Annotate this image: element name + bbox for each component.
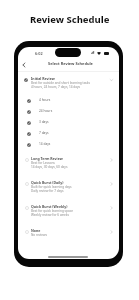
staticText: Best for outside and short learning task… — [31, 81, 90, 85]
staticText: 3 days — [39, 120, 49, 124]
staticText: Select Review Schedule — [48, 61, 93, 66]
staticText: Long Term Review — [31, 156, 63, 161]
button[interactable] — [22, 118, 114, 128]
staticText: Best for Lessons — [31, 161, 55, 165]
button[interactable] — [20, 226, 116, 239]
staticText: Daily review for 7 days — [31, 189, 64, 193]
button[interactable] — [20, 154, 116, 172]
staticText: Weekly review for 6 weeks — [31, 213, 69, 217]
staticText: 24 hours — [39, 109, 53, 113]
staticText: No reviews — [31, 233, 47, 237]
staticText: 14 days, 30 days, 60 days — [31, 165, 68, 169]
staticText: Built for quick learning days — [31, 185, 72, 189]
button[interactable] — [20, 74, 116, 92]
staticText: 4 hours, 24 hours, 7 days, 14 days — [31, 85, 81, 89]
button[interactable]: Back — [21, 61, 28, 68]
staticText: 6:02 — [35, 51, 43, 56]
staticText: Initial Review — [31, 76, 55, 81]
staticText: 7 days — [39, 131, 49, 135]
staticText: 14 days — [39, 142, 51, 146]
staticText: Quick Burst (Weekly) — [31, 204, 68, 209]
button[interactable] — [22, 129, 114, 139]
staticText: Quick Burst (Daily) — [31, 180, 64, 185]
button[interactable] — [22, 140, 114, 150]
button[interactable] — [22, 96, 114, 106]
button[interactable] — [22, 107, 114, 117]
staticText: Review Schedule — [30, 13, 110, 26]
button[interactable] — [20, 202, 116, 220]
button[interactable] — [20, 178, 116, 196]
staticText: None — [31, 228, 41, 233]
staticText: 4 hours — [39, 98, 51, 102]
staticText: Best for quick learning space — [31, 209, 73, 213]
